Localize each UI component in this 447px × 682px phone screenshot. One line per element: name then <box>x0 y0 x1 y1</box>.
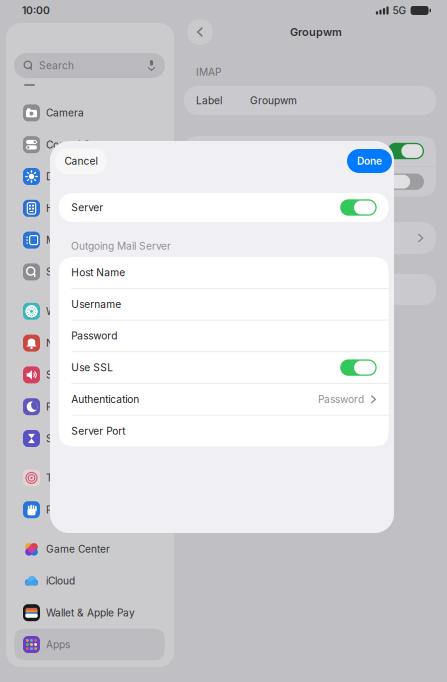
staticText: Server <box>71 201 103 214</box>
staticText: iCloud <box>46 575 75 587</box>
staticText: Use SSL <box>71 361 113 374</box>
staticText: IMAP <box>196 66 221 78</box>
button[interactable]: Screen Time <box>14 423 165 454</box>
button[interactable]: Notifications <box>14 327 165 359</box>
button[interactable]: Done <box>347 149 392 173</box>
button[interactable]: Privacy & Security <box>14 494 165 526</box>
button[interactable]: Wallpaper <box>14 295 165 327</box>
staticText: Label <box>196 94 222 107</box>
staticText: Password <box>71 330 117 342</box>
staticText: Notifications <box>46 337 105 349</box>
staticText: Multitasking & Gestures <box>46 234 157 246</box>
staticText: Apps <box>46 638 70 651</box>
staticText: Sounds <box>46 369 82 381</box>
button[interactable]: Control Center <box>14 129 165 161</box>
staticText: Groupwm <box>250 94 297 107</box>
button[interactable]: Focus <box>14 391 165 423</box>
staticText: Display & Brightness <box>46 170 143 183</box>
staticText: Camera <box>46 107 84 119</box>
staticText: Touch ID & Passcode <box>46 472 148 484</box>
staticText: 10:00 <box>22 4 50 17</box>
button[interactable]: Touch ID & Passcode <box>14 462 165 494</box>
staticText: Password <box>318 393 364 405</box>
button[interactable]: Camera <box>14 97 165 129</box>
staticText: Server Port <box>71 425 125 437</box>
staticText: Host Name <box>71 266 125 279</box>
button[interactable]: Back <box>187 19 213 45</box>
button[interactable]: Multitasking & Gestures <box>14 224 165 256</box>
button[interactable]: Sounds <box>14 359 165 391</box>
staticText: Screen Time <box>46 432 108 445</box>
staticText: Search <box>46 266 81 278</box>
button[interactable]: Wallet & Apple Pay <box>14 597 165 629</box>
button[interactable]: Server <box>59 193 389 222</box>
staticText: Control Center <box>46 139 115 151</box>
staticText: Privacy & Security <box>46 504 136 516</box>
button[interactable]: Game Center <box>14 533 165 565</box>
staticText: Wallpaper <box>46 305 93 317</box>
button[interactable]: Use SSL <box>59 352 389 383</box>
button[interactable]: Server Port <box>59 415 389 446</box>
staticText: Authentication <box>71 393 139 405</box>
staticText: Cancel <box>64 155 97 167</box>
button[interactable]: Cancel <box>55 148 107 174</box>
button[interactable]: Search <box>14 256 165 288</box>
button[interactable]: Display & Brightness <box>14 161 165 192</box>
staticText: Groupwm <box>290 25 342 39</box>
staticText: Home Screen & App Library <box>46 202 157 214</box>
staticText: Focus <box>46 401 75 413</box>
button[interactable]: iCloud <box>14 565 165 597</box>
staticText: Wallet & Apple Pay <box>46 607 135 619</box>
button[interactable]: Authentication <box>59 384 389 415</box>
staticText: Search <box>39 59 74 72</box>
staticText: Done <box>357 155 382 167</box>
button[interactable]: Password <box>59 320 389 351</box>
staticText: Game Center <box>46 543 110 555</box>
button[interactable]: Apps <box>14 629 165 660</box>
button[interactable]: Home Screen & App Library <box>14 192 165 224</box>
staticText: Outgoing Mail Server <box>71 240 171 252</box>
staticText: 5G <box>393 4 407 17</box>
button[interactable]: Username <box>59 289 389 320</box>
button[interactable]: Host Name <box>59 257 389 288</box>
staticText: Username <box>71 298 121 310</box>
